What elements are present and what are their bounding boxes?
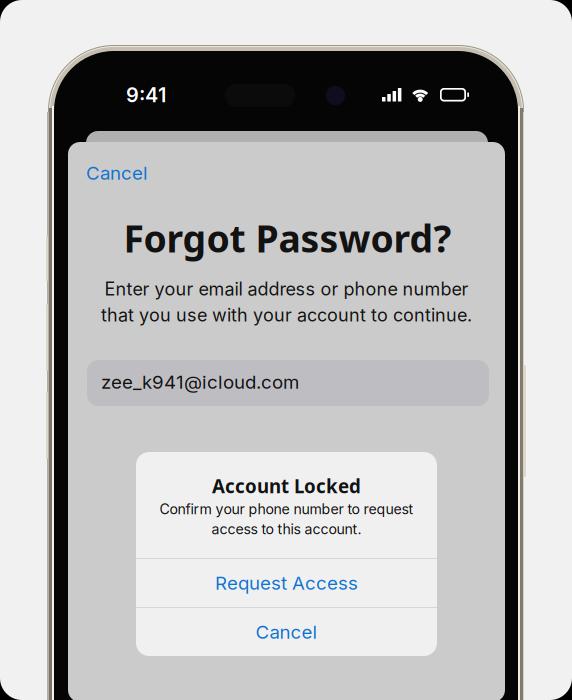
staticText: Forgot Password? xyxy=(123,213,451,263)
staticText: 9:41 xyxy=(126,83,166,107)
staticText: Account Locked xyxy=(212,474,361,498)
staticText: zee_k941@icloud.com xyxy=(101,371,299,393)
staticText: that you use with your account to contin… xyxy=(101,304,472,326)
button[interactable]: Cancel xyxy=(86,157,160,189)
staticText: Cancel xyxy=(86,162,148,184)
staticText: Cancel xyxy=(255,621,317,643)
staticText: Enter your email address or phone number xyxy=(104,278,468,300)
staticText: access to this account. xyxy=(211,520,361,537)
button[interactable]: Cancel xyxy=(136,608,437,656)
staticText: Request Access xyxy=(215,572,358,594)
staticText: Confirm your phone number to request xyxy=(159,500,413,517)
button[interactable]: Request Access xyxy=(136,559,437,607)
